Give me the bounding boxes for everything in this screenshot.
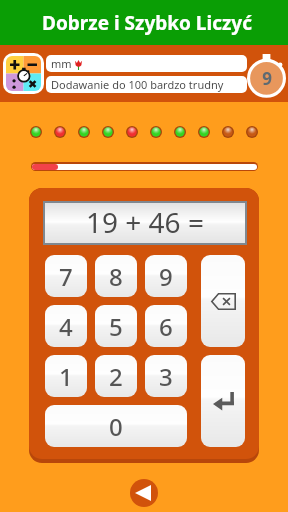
staticText: 2 [109, 360, 123, 393]
button[interactable]: 9 [145, 255, 187, 297]
button[interactable]: 7 [45, 255, 87, 297]
button[interactable]: 2 [95, 355, 137, 397]
button[interactable]: App icon [3, 53, 44, 94]
staticText: 8 [109, 260, 123, 293]
staticText: 6 [159, 310, 173, 343]
button[interactable]: 0 [45, 405, 187, 447]
staticText: 3 [159, 360, 173, 393]
staticText: 5 [109, 310, 123, 343]
staticText: 9 [159, 260, 173, 293]
button[interactable]: 5 [95, 305, 137, 347]
button[interactable]: 8 [95, 255, 137, 297]
staticText: 1 [59, 360, 73, 393]
button[interactable]: Back [130, 479, 158, 507]
staticText: 4 [59, 310, 73, 343]
button[interactable]: Enter [201, 355, 245, 447]
button[interactable]: Backspace [201, 255, 245, 347]
staticText: mm [51, 56, 72, 71]
staticText: 0 [109, 410, 123, 443]
staticText: Dobrze i Szybko Liczyć [42, 10, 252, 36]
staticText: 7 [59, 260, 73, 293]
staticText: Dodawanie do 100 bardzo trudny [51, 77, 224, 92]
staticText: 9 [262, 67, 272, 90]
staticText: 19 + 46 = [86, 203, 204, 241]
button[interactable]: 1 [45, 355, 87, 397]
button[interactable]: 3 [145, 355, 187, 397]
button[interactable]: 4 [45, 305, 87, 347]
button[interactable]: 6 [145, 305, 187, 347]
